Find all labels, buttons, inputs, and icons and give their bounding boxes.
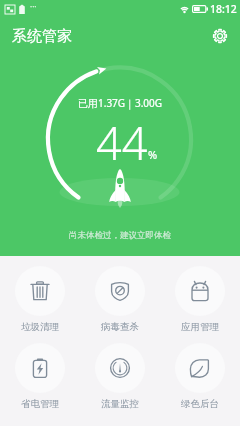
staticText: 垃圾清理: [21, 321, 59, 333]
staticText: ···: [30, 1, 37, 12]
staticText: 流量监控: [101, 398, 139, 410]
button[interactable]: 病毒查杀: [80, 261, 160, 338]
staticText: 已用1.37G｜3.00G: [78, 96, 163, 110]
staticText: 44: [96, 112, 148, 173]
button[interactable]: 绿色后台: [160, 338, 240, 414]
staticText: 绿色后台: [181, 398, 219, 410]
staticText: 系统管家: [12, 27, 72, 46]
button[interactable]: Settings: [206, 22, 234, 50]
staticText: 省电管理: [21, 398, 59, 410]
staticText: 尚未体检过，建议立即体检: [69, 230, 171, 241]
button[interactable]: 流量监控: [80, 338, 160, 414]
button[interactable]: 垃圾清理: [0, 261, 80, 338]
staticText: 病毒查杀: [101, 321, 139, 333]
staticText: %: [148, 147, 158, 162]
button[interactable]: 省电管理: [0, 338, 80, 414]
staticText: 应用管理: [181, 321, 219, 333]
staticText: 18:12: [210, 2, 237, 16]
button[interactable]: 应用管理: [160, 261, 240, 338]
